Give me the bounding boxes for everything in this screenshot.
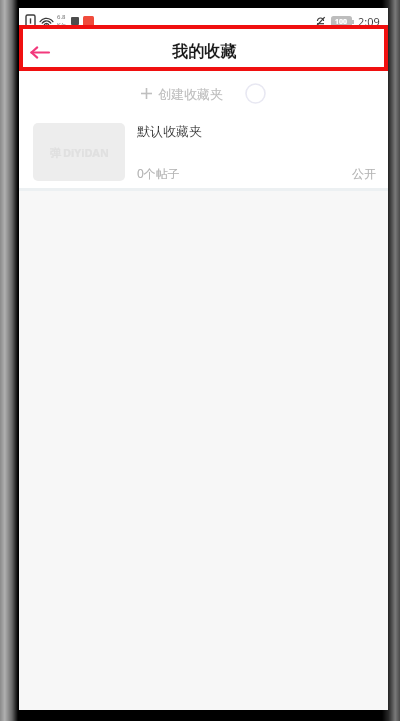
staticText: K/s: [57, 21, 66, 29]
staticText: 创建收藏夹: [158, 86, 223, 102]
staticText: 公开: [352, 166, 376, 181]
button[interactable]: 创建收藏夹: [19, 70, 388, 116]
staticText: 2:09: [358, 14, 380, 29]
button[interactable]: 弹: [19, 116, 388, 188]
staticText: 弹: [50, 146, 61, 160]
staticText: 我的收藏: [172, 42, 236, 62]
button[interactable]: Back: [19, 34, 59, 70]
staticText: 100: [335, 17, 348, 27]
staticText: DiYiDAN: [63, 145, 109, 160]
staticText: 6.8: [57, 13, 66, 21]
staticText: 默认收藏夹: [137, 123, 202, 139]
staticText: 0个帖子: [137, 165, 180, 181]
